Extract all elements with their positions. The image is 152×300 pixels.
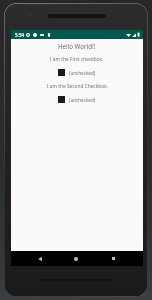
staticText: I am the Second Checkbox. xyxy=(47,83,108,90)
staticText: 5:54 xyxy=(15,32,25,38)
staticText: (unchecked) xyxy=(69,70,96,76)
button[interactable]: (unchecked) xyxy=(58,96,96,103)
staticText: (unchecked) xyxy=(69,97,96,103)
button[interactable]: Home xyxy=(65,251,87,266)
staticText: Hello World!! xyxy=(58,42,96,50)
button[interactable]: Back xyxy=(29,251,51,266)
button[interactable]: Recent apps xyxy=(102,251,124,266)
staticText: I am the First checkbox. xyxy=(50,56,104,63)
button[interactable]: (unchecked) xyxy=(58,69,96,76)
